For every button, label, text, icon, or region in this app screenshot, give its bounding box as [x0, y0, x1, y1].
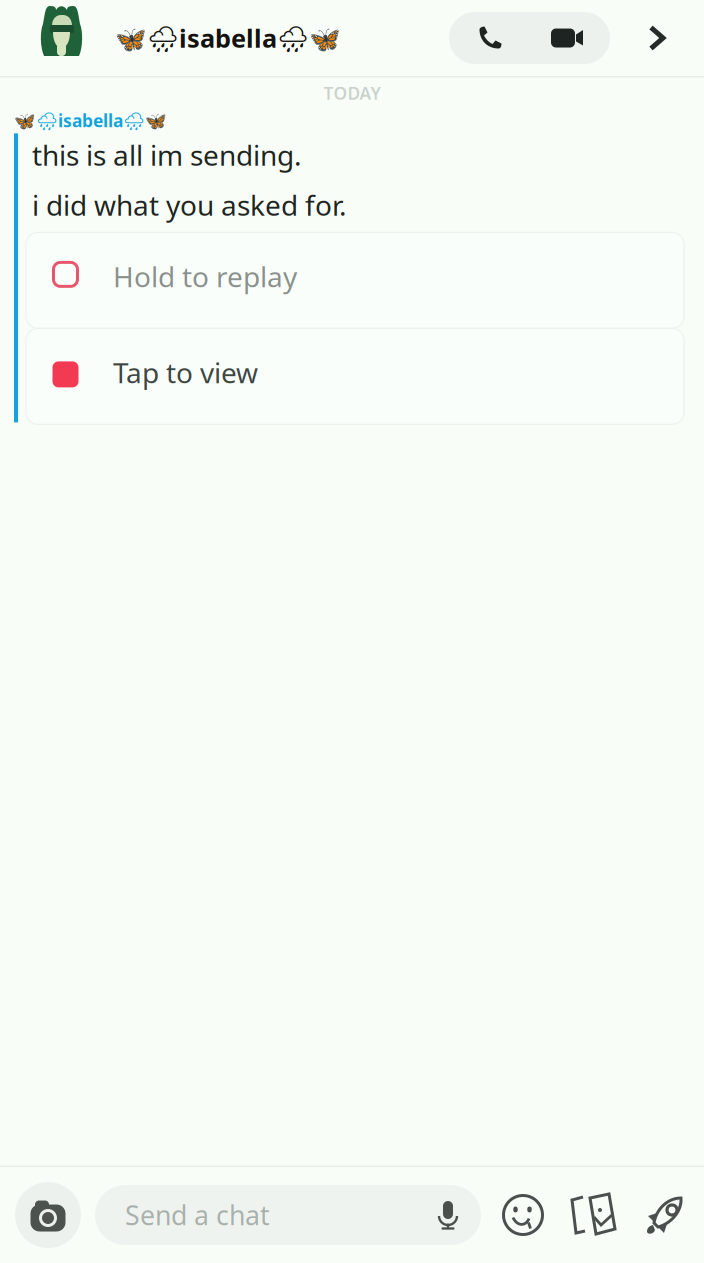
- button[interactable]: Emoji: [488, 1187, 558, 1243]
- button[interactable]: More: [610, 10, 704, 66]
- staticText: this is all im sending.: [32, 136, 302, 173]
- staticText: 🦋🌧isabella🌧🦋: [14, 109, 167, 132]
- button[interactable]: Hold to replay: [26, 232, 684, 328]
- button[interactable]: Call: [452, 12, 528, 64]
- staticText: Send a chat: [125, 1197, 270, 1233]
- staticText: 🦋🌧isabella🌧🦋: [115, 21, 341, 55]
- button[interactable]: Stickers: [558, 1187, 628, 1243]
- staticText: TODAY: [323, 81, 380, 104]
- staticText: Hold to replay: [113, 258, 297, 295]
- button[interactable]: Send a chat: [81, 1185, 481, 1245]
- button[interactable]: Video call: [528, 12, 606, 64]
- button[interactable]: 🦋🌧isabella🌧🦋: [83, 21, 341, 55]
- button[interactable]: Profile: [0, 11, 83, 65]
- button[interactable]: Camera: [0, 1182, 81, 1248]
- button[interactable]: Tap to view: [26, 328, 684, 424]
- staticText: Tap to view: [113, 354, 258, 391]
- button[interactable]: Send: [628, 1187, 704, 1243]
- staticText: i did what you asked for.: [32, 186, 347, 223]
